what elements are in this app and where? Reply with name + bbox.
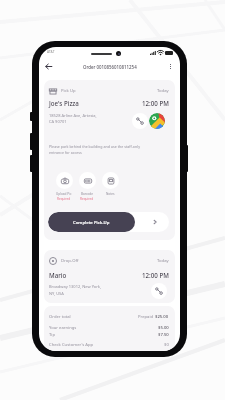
staticText: AT&T — [47, 50, 55, 54]
staticText: Order 0010856010811254 — [83, 64, 137, 70]
staticText: Mario — [49, 271, 67, 279]
staticText: Check Customer's App — [49, 342, 94, 348]
staticText: Upload Pic — [56, 192, 72, 196]
staticText: Today — [157, 88, 169, 94]
button[interactable]: More options — [164, 60, 177, 73]
staticText: Order total — [49, 314, 71, 320]
staticText: NY, USA — [49, 291, 64, 296]
staticText: Prepaid — [138, 314, 155, 320]
staticText: 12:00 PM — [142, 271, 169, 279]
button[interactable]: Open in Google Maps — [149, 113, 165, 129]
staticText: Please park behind the building and use … — [49, 144, 140, 149]
staticText: 18528 Arline Ave, Artesia, — [49, 113, 97, 118]
button[interactable]: Call Joe's Pizza — [132, 113, 148, 129]
staticText: CA 90701 — [49, 119, 67, 124]
staticText: Your earnings — [49, 325, 77, 331]
staticText: entrance for access — [49, 150, 82, 155]
staticText: Notes — [106, 192, 115, 196]
staticText: $5.00 — [158, 325, 169, 331]
button[interactable]: Call Mario — [151, 283, 167, 299]
staticText: Broadway 13012, New York, — [49, 284, 102, 289]
staticText: Required — [57, 197, 71, 201]
staticText: Required — [80, 197, 94, 201]
staticText: $25.00 — [155, 314, 169, 320]
staticText: Today — [157, 258, 169, 264]
button[interactable]: Upload Pic — [51, 172, 77, 201]
staticText: Drop-Off — [61, 258, 79, 264]
staticText: Complete Pick-Up — [73, 219, 110, 225]
staticText: $0 — [164, 342, 169, 348]
button[interactable]: Back — [42, 60, 55, 73]
staticText: 12:00 PM — [142, 99, 169, 107]
staticText: $7.50 — [158, 332, 169, 338]
staticText: Joe's Pizza — [49, 99, 79, 107]
staticText: Barcode — [81, 192, 93, 196]
button[interactable]: Notes — [97, 172, 123, 197]
staticText: Tip — [49, 332, 55, 338]
button[interactable]: Complete Pick-Up — [48, 212, 135, 232]
staticText: Pick Up — [61, 88, 76, 94]
button[interactable]: Barcode — [74, 172, 100, 201]
